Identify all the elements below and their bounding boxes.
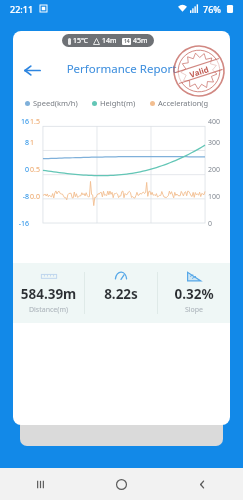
button[interactable]: Back [162,468,243,500]
staticText: Performance Report [13,61,230,77]
staticText: -8 [15,192,29,202]
staticText: 45m [133,36,148,46]
staticText: Distance(m) [13,305,84,315]
button[interactable]: Height(m) [92,98,136,108]
button[interactable]: 0.32% [158,263,230,323]
staticText: 14 [124,38,130,45]
button[interactable]: Acceleration(g [150,98,209,108]
staticText: 100 [208,192,228,202]
staticText: 0.5 [30,165,44,175]
staticText: 300 [208,138,228,148]
staticText: 15℃ [73,36,88,46]
staticText: 584.39m [13,285,84,303]
staticText: -16 [15,219,29,229]
staticText: 0 [208,219,228,229]
staticText: 8 [15,138,29,148]
staticText: Acceleration(g [158,98,209,108]
staticText: Slope [158,305,230,315]
staticText: 76% [203,3,221,15]
button[interactable]: 584.39m [13,263,84,323]
staticText: 14m [102,36,117,46]
button[interactable]: Home [81,468,162,500]
staticText: 8.22s [85,285,157,303]
staticText: 0.32% [158,285,230,303]
staticText: Valid [188,63,210,80]
button[interactable]: Back [17,55,47,85]
staticText: 200 [208,165,228,175]
button[interactable]: Speed(km/h) [25,98,78,108]
staticText: 400 [208,117,228,127]
button[interactable]: Recents [0,468,81,500]
button[interactable]: 15℃ [62,34,154,47]
staticText: 1.5 [30,117,44,127]
staticText: Height(m) [100,98,136,108]
staticText: 0 [15,165,29,175]
staticText: Speed(km/h) [33,98,78,108]
staticText: 0.0 [30,192,44,202]
staticText: 1 [30,138,44,148]
button[interactable]: 8.22s [85,263,157,323]
staticText: 22:11 [10,3,34,15]
staticText: 16 [15,117,29,127]
